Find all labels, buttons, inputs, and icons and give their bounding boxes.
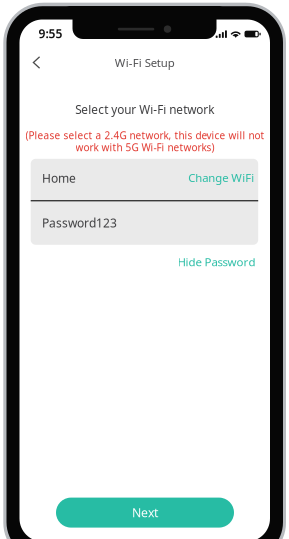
button[interactable]: Change WiFi [186, 167, 256, 188]
staticText: Password123 [42, 215, 117, 231]
staticText: Change WiFi [188, 170, 254, 185]
staticText: Next [132, 504, 158, 521]
staticText: 9:55 [39, 25, 63, 42]
button[interactable]: Next [56, 498, 234, 528]
staticText: Home [42, 170, 76, 186]
button[interactable]: Hide Password [176, 251, 258, 273]
staticText: (Please select a 2.4G network, this devi… [25, 128, 264, 154]
staticText: Wi-Fi Setup [115, 55, 175, 70]
button[interactable]: Back [23, 49, 49, 75]
staticText: Select your Wi-Fi network [75, 101, 214, 117]
staticText: Hide Password [178, 254, 256, 270]
